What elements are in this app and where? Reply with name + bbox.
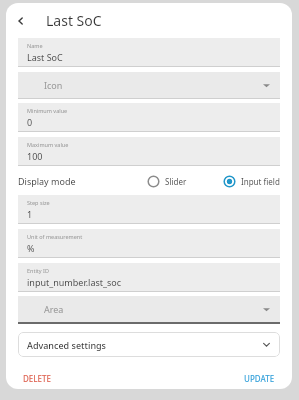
button[interactable]: Advanced settings (18, 332, 280, 357)
button[interactable]: Icon (18, 72, 280, 99)
staticText: Minimum value (27, 107, 68, 114)
staticText: Unit of measurement (27, 233, 83, 240)
staticText: Last SoC (27, 51, 63, 63)
staticText: Entity ID (27, 267, 49, 274)
staticText: input_number.last_soc (27, 276, 122, 288)
staticText: Area (44, 303, 64, 315)
staticText: Maximum value (27, 141, 69, 148)
button[interactable]: Maximum value (18, 137, 280, 166)
button[interactable]: Slider (147, 175, 187, 188)
staticText: 100 (27, 150, 43, 162)
staticText: UPDATE (244, 373, 275, 384)
staticText: Step size (27, 199, 50, 206)
button[interactable]: Unit of measurement (18, 229, 280, 258)
button[interactable]: Area (18, 296, 280, 324)
button[interactable]: Input field (223, 175, 280, 188)
button[interactable]: Back (6, 6, 36, 36)
staticText: DELETE (23, 373, 51, 384)
staticText: 1 (27, 208, 33, 220)
button[interactable]: Minimum value (18, 103, 280, 132)
button[interactable]: UPDATE (239, 370, 280, 387)
button[interactable]: Step size (18, 195, 280, 224)
staticText: Slider (165, 176, 187, 187)
staticText: Name (27, 42, 43, 49)
staticText: Icon (44, 79, 63, 91)
staticText: Last SoC (46, 11, 102, 30)
button[interactable]: DELETE (18, 370, 56, 387)
staticText: 0 (27, 116, 33, 128)
staticText: Input field (241, 176, 280, 187)
button[interactable]: Entity ID (18, 263, 280, 292)
button[interactable]: Name (18, 38, 280, 67)
staticText: Advanced settings (27, 339, 106, 351)
staticText: Display mode (18, 175, 76, 187)
staticText: % (27, 242, 35, 254)
